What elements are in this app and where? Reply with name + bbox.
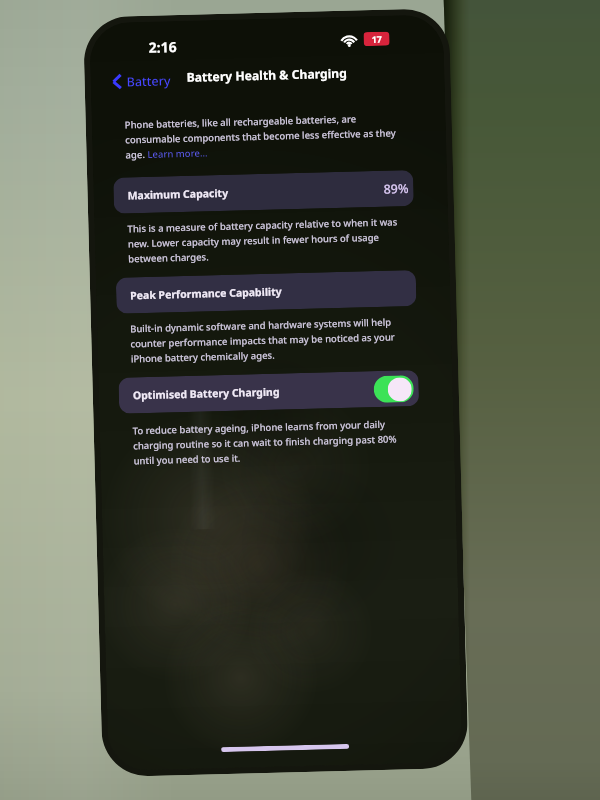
staticText: Maximum Capacity [127, 186, 229, 202]
button[interactable]: Peak Performance Capability [116, 270, 416, 314]
staticText: To reduce battery ageing, iPhone learns … [133, 417, 412, 467]
staticText: 17 [371, 33, 383, 45]
staticText: Battery Health & Charging [186, 65, 348, 86]
staticText: 2:16 [148, 37, 177, 57]
staticText: Built-in dynamic software and hardware s… [130, 315, 409, 365]
staticText: 89% [383, 180, 409, 198]
staticText: Battery [126, 72, 171, 90]
staticText: Peak Performance Capability [130, 284, 282, 302]
button[interactable]: Maximum Capacity [113, 170, 414, 214]
staticText: Optimised Battery Charging [133, 384, 280, 402]
staticText: This is a measure of battery capacity re… [127, 215, 406, 265]
button[interactable]: Battery [110, 71, 171, 91]
button[interactable]: Optimised Battery Charging [118, 370, 419, 414]
button[interactable]: Optimised Battery Charging toggle [373, 375, 414, 403]
staticText: Phone batteries, like all rechargeable b… [125, 111, 404, 161]
